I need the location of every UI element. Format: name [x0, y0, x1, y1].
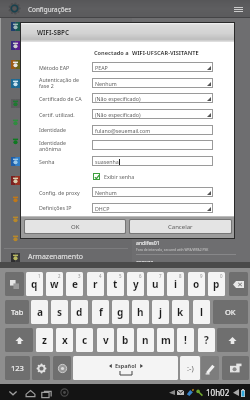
button[interactable]: Backspace — [229, 272, 248, 296]
button[interactable]: ? — [198, 328, 215, 352]
staticText: j — [159, 305, 162, 319]
staticText: WIFI-SBPC — [37, 28, 70, 37]
button[interactable]: c — [76, 328, 93, 352]
staticText: Armazenamento — [28, 252, 83, 262]
button[interactable]: p — [208, 272, 225, 296]
staticText: 1 — [38, 273, 41, 279]
staticText: :-) — [187, 363, 194, 373]
button[interactable]: Nenhum — [92, 187, 213, 197]
button[interactable]: x — [56, 328, 73, 352]
staticText: Cancelar — [168, 223, 193, 231]
button[interactable]: g — [112, 300, 129, 324]
staticText: z — [42, 333, 47, 347]
button[interactable]: (Não especificado) — [92, 109, 213, 119]
button[interactable]: j — [152, 300, 169, 324]
staticText: l — [200, 305, 203, 319]
button[interactable]: Exibir senha — [93, 173, 135, 180]
button[interactable]: Emoji — [180, 356, 200, 380]
staticText: s — [57, 305, 63, 319]
button[interactable]: i — [167, 272, 184, 296]
button[interactable]: k — [172, 300, 189, 324]
button[interactable]: Cancelar — [130, 220, 231, 233]
button[interactable]: b — [117, 328, 134, 352]
button[interactable]: z — [36, 328, 53, 352]
staticText: r — [93, 277, 98, 291]
button[interactable]: y — [127, 272, 144, 296]
staticText: y — [133, 277, 139, 291]
button[interactable]: Settings — [32, 356, 50, 380]
button[interactable]: Recents — [41, 388, 54, 400]
staticText: ! — [184, 333, 187, 347]
button[interactable]: PEAP — [92, 62, 213, 72]
staticText: Nenhum — [95, 80, 117, 87]
button[interactable]: u — [147, 272, 164, 296]
button[interactable]: Switch keyboard — [5, 272, 24, 296]
staticText: Español — [115, 362, 137, 369]
button[interactable]: Nenhum — [92, 78, 213, 88]
button[interactable]: t — [107, 272, 124, 296]
button[interactable]: v — [97, 328, 114, 352]
staticText: a — [37, 305, 43, 319]
staticText: 6 — [139, 273, 142, 279]
button[interactable]: s — [51, 300, 68, 324]
button[interactable]: o — [188, 272, 205, 296]
button[interactable]: w — [46, 272, 63, 296]
staticText: h — [137, 305, 144, 319]
button[interactable]: a — [31, 300, 48, 324]
button[interactable]: r — [87, 272, 104, 296]
staticText: o — [193, 277, 200, 291]
staticText: f — [99, 305, 103, 319]
staticText: 123 — [11, 363, 24, 373]
button[interactable]: suasenha — [92, 156, 213, 166]
staticText: 0 — [220, 273, 223, 279]
button[interactable]: n — [137, 328, 154, 352]
button[interactable]: Numbers — [5, 356, 30, 380]
staticText: Tab — [11, 307, 24, 317]
button[interactable] — [92, 140, 213, 150]
button[interactable]: OK — [213, 300, 248, 324]
staticText: asouza — [136, 258, 154, 265]
staticText: b — [122, 333, 129, 347]
button[interactable]: Camera — [222, 356, 249, 380]
button[interactable]: m — [157, 328, 174, 352]
staticText: Certificado de CA — [39, 95, 82, 102]
staticText: fulano@seuemail.com — [95, 127, 151, 134]
button[interactable]: DHCP — [92, 203, 213, 213]
button[interactable]: Shift — [5, 328, 33, 352]
button[interactable]: Shift — [217, 328, 248, 352]
button[interactable]: fulano@seuemail.com — [92, 125, 213, 135]
staticText: 2 — [58, 273, 61, 279]
button[interactable]: l — [193, 300, 210, 324]
staticText: t — [113, 277, 118, 291]
button[interactable]: Back — [8, 388, 18, 398]
staticText: q — [31, 277, 38, 291]
staticText: Definições IP — [39, 204, 72, 211]
button[interactable]: Español — [73, 356, 178, 380]
staticText: 8 — [179, 273, 182, 279]
button[interactable]: e — [66, 272, 83, 296]
button[interactable]: f — [92, 300, 109, 324]
staticText: k — [177, 305, 184, 319]
button[interactable]: q — [26, 272, 43, 296]
staticText: Fora de intervalo, secured with WPA/WPA2… — [136, 247, 209, 251]
button[interactable]: h — [132, 300, 149, 324]
button[interactable]: Voice input — [53, 356, 71, 380]
staticText: andifes01 — [136, 239, 160, 246]
button[interactable]: ! — [177, 328, 194, 352]
button[interactable]: Menu — [234, 7, 243, 12]
staticText: Identidade — [39, 126, 67, 133]
button[interactable]: (Não especificado) — [92, 93, 213, 103]
staticText: Autenticação de fase 2 — [39, 76, 79, 90]
staticText: OK — [71, 223, 80, 231]
button[interactable]: OK — [25, 220, 125, 233]
staticText: OK — [225, 307, 236, 317]
staticText: suasenha — [95, 158, 119, 165]
button[interactable]: d — [71, 300, 88, 324]
button[interactable]: Tab — [5, 300, 29, 324]
button[interactable]: Screenshot — [60, 388, 69, 397]
button[interactable]: Home — [25, 388, 36, 399]
button[interactable]: Handwriting — [201, 356, 219, 380]
staticText: v — [103, 333, 109, 347]
staticText: 10h02 — [206, 387, 230, 398]
staticText: 4 — [99, 273, 102, 279]
